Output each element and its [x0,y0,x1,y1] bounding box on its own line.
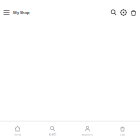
button[interactable]: Cart [105,122,140,140]
staticText: Home [13,133,21,136]
button[interactable]: Home [0,122,35,140]
button[interactable]: Bag [127,9,137,16]
button[interactable]: Settings [117,9,127,16]
button[interactable]: Account [70,122,105,140]
staticText: Cart [120,133,125,136]
button[interactable]: Search [35,122,70,140]
staticText: My Shop [13,10,30,15]
button[interactable]: Search [110,9,117,16]
staticText: Search [48,133,56,136]
staticText: Account [82,133,93,136]
button[interactable]: Menu [3,9,10,16]
